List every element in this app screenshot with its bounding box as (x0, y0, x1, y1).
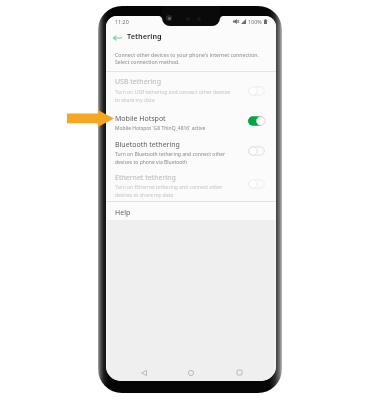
button[interactable]: Mobile Hotspot switch (244, 114, 270, 128)
staticText: USB tethering (115, 77, 161, 87)
button[interactable] (106, 110, 276, 136)
staticText: Ethernet tethering (115, 173, 176, 183)
staticText: Mobile Hotspot 'G8 ThinQ_4816' active (115, 125, 255, 132)
staticText: 11:20 (115, 18, 129, 25)
staticText: Tethering (127, 31, 162, 41)
button[interactable]: Bluetooth tethering switch (244, 144, 270, 158)
staticText: Connect other devices to your phone's in… (115, 51, 271, 65)
staticText: Bluetooth tethering (115, 140, 180, 150)
staticText: 100% (248, 18, 262, 25)
button[interactable] (106, 173, 276, 210)
button[interactable] (106, 136, 276, 173)
button[interactable]: Ethernet tethering switch (244, 177, 270, 191)
button[interactable]: Home (181, 364, 201, 381)
button[interactable]: Back (134, 364, 154, 381)
button[interactable]: Navigate up (106, 29, 129, 47)
staticText: Help (115, 208, 131, 218)
staticText: Turn on Ethernet tethering and connect o… (115, 184, 255, 198)
button[interactable]: Help (106, 201, 276, 220)
button[interactable]: Recent apps (229, 364, 249, 381)
staticText: Turn on Bluetooth tethering and connect … (115, 151, 255, 165)
button[interactable]: USB tethering switch (244, 84, 270, 98)
staticText: Turn on USB tethering and connect other … (115, 89, 255, 103)
staticText: Mobile Hotspot (115, 114, 166, 124)
button[interactable] (106, 72, 276, 110)
